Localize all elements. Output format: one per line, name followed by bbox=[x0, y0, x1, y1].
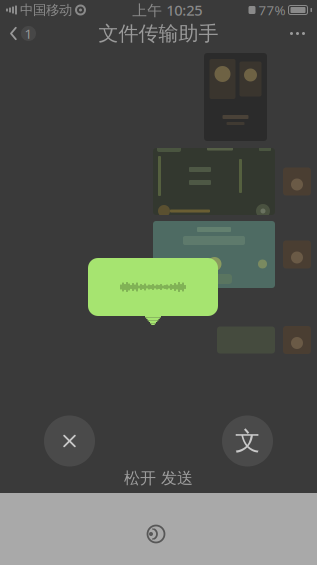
button[interactable]: Convert to text bbox=[222, 415, 273, 466]
staticText: 松开 发送 bbox=[124, 468, 193, 488]
staticText: 文 bbox=[235, 425, 260, 456]
staticText: 上午 10:25 bbox=[132, 0, 202, 20]
button[interactable]: Cancel bbox=[44, 415, 95, 466]
staticText: 文件传输助手 bbox=[98, 21, 218, 46]
staticText: 1 bbox=[24, 25, 32, 42]
button[interactable]: Back bbox=[0, 20, 45, 47]
button[interactable]: More bbox=[278, 20, 317, 47]
staticText: 中国移动 bbox=[20, 2, 72, 18]
staticText: 77% bbox=[258, 1, 285, 19]
